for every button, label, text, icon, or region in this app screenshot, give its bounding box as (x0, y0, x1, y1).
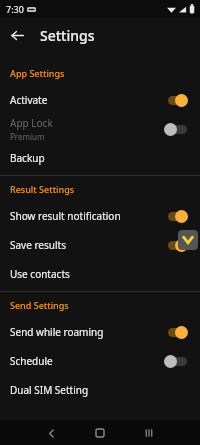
button[interactable]: App Lock (0, 114, 200, 143)
staticText: Use contacts (10, 267, 70, 281)
button[interactable]: Recents (138, 422, 160, 444)
button[interactable]: Save results (0, 230, 200, 259)
staticText: Schedule (10, 354, 53, 368)
staticText: Save results (10, 238, 66, 252)
button[interactable]: Back (5, 23, 29, 47)
staticText: 7:30 (6, 3, 24, 15)
button[interactable]: Schedule (0, 346, 200, 375)
staticText: Backup (10, 151, 45, 165)
staticText: Premium (10, 131, 45, 142)
staticText: App Settings (10, 67, 65, 79)
button[interactable]: Dual SIM Setting (0, 375, 200, 404)
staticText: Dual SIM Setting (10, 383, 89, 397)
button[interactable]: Send while roaming (0, 317, 200, 346)
staticText: App Lock (10, 116, 53, 130)
staticText: Result Settings (10, 183, 75, 195)
staticText: Send while roaming (10, 325, 104, 339)
staticText: Show result notification (10, 209, 121, 223)
button[interactable]: Activate (0, 85, 200, 114)
button[interactable]: Show result notification (0, 201, 200, 230)
button[interactable]: Fast scroll (178, 230, 198, 250)
button[interactable]: Backup (0, 143, 200, 172)
button[interactable]: Use contacts (0, 259, 200, 288)
button[interactable]: Home (89, 422, 111, 444)
staticText: Activate (10, 93, 48, 107)
button[interactable]: Back (40, 422, 62, 444)
staticText: Send Settings (10, 299, 69, 311)
staticText: Settings (40, 26, 95, 45)
